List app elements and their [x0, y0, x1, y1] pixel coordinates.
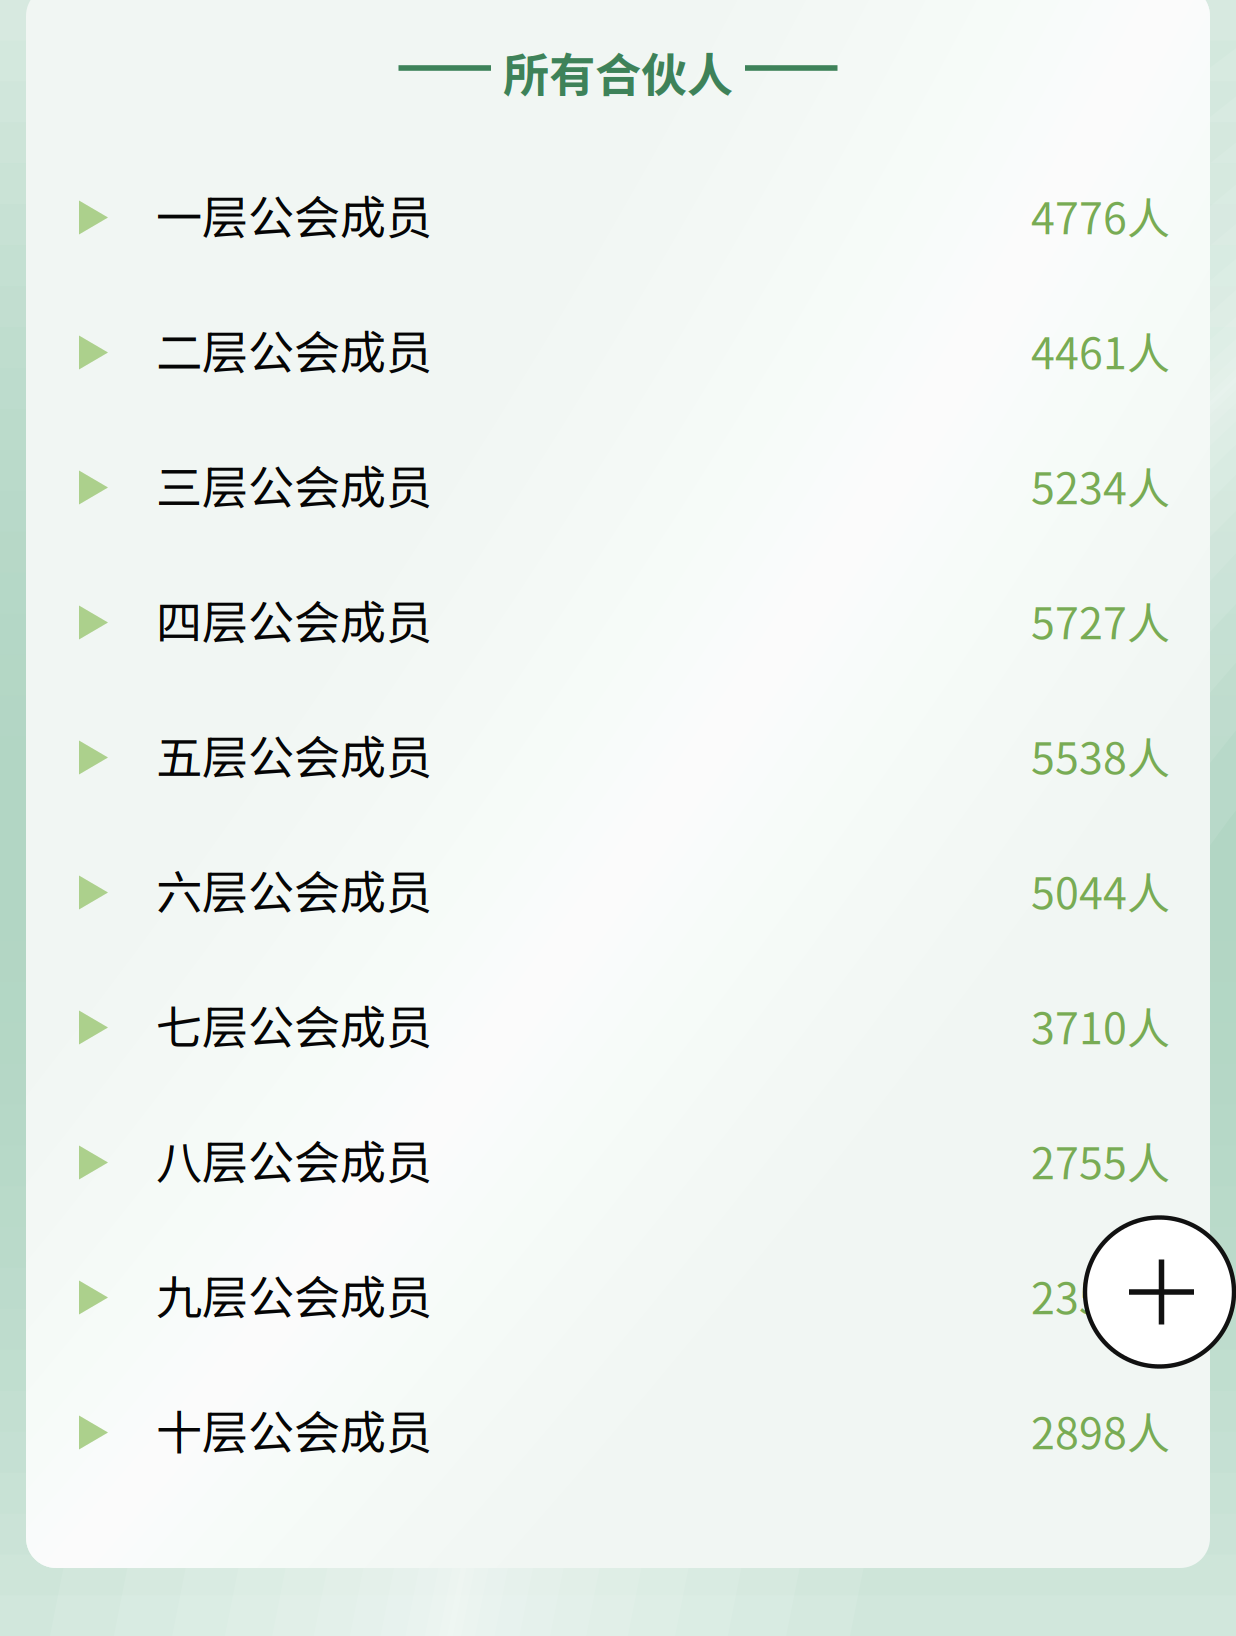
- staticText: 六层公会成员: [156, 856, 432, 923]
- button[interactable]: 九层公会成员: [26, 1230, 1210, 1365]
- staticText: 十层公会成员: [156, 1396, 432, 1463]
- button[interactable]: 四层公会成员: [26, 555, 1210, 690]
- staticText: 5234人: [1031, 454, 1170, 517]
- staticText: 四层公会成员: [156, 586, 432, 653]
- staticText: 5727人: [1031, 589, 1170, 652]
- button[interactable]: Add partner: [1085, 1217, 1234, 1366]
- staticText: 一层公会成员: [156, 181, 432, 248]
- button[interactable]: 三层公会成员: [26, 420, 1210, 555]
- button[interactable]: 二层公会成员: [26, 285, 1210, 420]
- staticText: 2755人: [1031, 1129, 1170, 1192]
- staticText: 八层公会成员: [156, 1126, 432, 1193]
- staticText: 4776人: [1031, 184, 1170, 247]
- staticText: 二层公会成员: [156, 316, 432, 383]
- staticText: 2355人: [1031, 1264, 1170, 1327]
- staticText: 4461人: [1031, 319, 1170, 382]
- button[interactable]: 五层公会成员: [26, 690, 1210, 825]
- staticText: 5044人: [1031, 859, 1170, 922]
- button[interactable]: 七层公会成员: [26, 960, 1210, 1095]
- staticText: 所有合伙人: [503, 39, 733, 105]
- button[interactable]: 六层公会成员: [26, 825, 1210, 960]
- staticText: 三层公会成员: [156, 451, 432, 518]
- staticText: 五层公会成员: [156, 721, 432, 788]
- button[interactable]: 八层公会成员: [26, 1095, 1210, 1230]
- button[interactable]: 十层公会成员: [26, 1365, 1210, 1500]
- staticText: 3710人: [1031, 994, 1170, 1057]
- staticText: 九层公会成员: [156, 1261, 432, 1328]
- staticText: 七层公会成员: [156, 991, 432, 1058]
- staticText: 2898人: [1031, 1399, 1170, 1462]
- staticText: 5538人: [1031, 724, 1170, 787]
- button[interactable]: 一层公会成员: [26, 150, 1210, 285]
